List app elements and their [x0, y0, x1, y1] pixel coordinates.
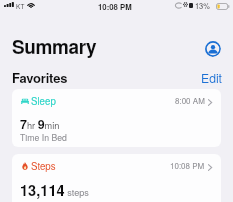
- button[interactable]: Steps: [12, 154, 221, 202]
- staticText: Sleep: [31, 94, 56, 108]
- staticText: Summary: [12, 33, 97, 60]
- staticText: KT: [16, 2, 25, 11]
- staticText: 7hr 9min: [20, 115, 60, 133]
- staticText: 10:08 PM: [98, 1, 132, 12]
- button[interactable]: Sleep: [12, 89, 221, 147]
- staticText: Edit: [201, 69, 222, 86]
- staticText: 13%: [195, 1, 210, 12]
- staticText: Time In Bed: [20, 131, 67, 143]
- staticText: 8:00 AM: [175, 95, 205, 106]
- staticText: 10:08 PM: [170, 160, 205, 171]
- staticText: Favorites: [12, 68, 68, 87]
- staticText: Steps: [31, 159, 56, 173]
- button[interactable]: Edit: [201, 69, 222, 86]
- button[interactable]: Profile: [204, 40, 221, 57]
- staticText: 13,114 steps: [20, 180, 89, 201]
